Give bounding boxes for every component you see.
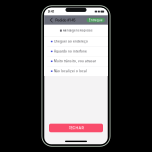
staticText: Cheguei ao endereço: [54, 40, 88, 43]
staticText: Muito trânsito, vou atrasar: [54, 59, 96, 63]
staticText: Aguardo no interfone: [54, 50, 87, 53]
staticText: Não localizei o local: [54, 69, 87, 73]
staticText: FECHAR: [68, 126, 83, 130]
staticText: 9:41: [48, 9, 54, 13]
staticText: Mensagens Rápidas: [63, 29, 92, 32]
button[interactable]: Muito trânsito, vou atrasar: [44, 57, 108, 66]
staticText: Pedido #145: [55, 18, 75, 22]
button[interactable]: Não localizei o local: [44, 66, 108, 76]
button[interactable]: Aguardo no interfone: [44, 47, 108, 56]
button[interactable]: Back: [50, 15, 53, 25]
staticText: Entregue: [89, 18, 103, 22]
button[interactable]: FECHAR: [49, 124, 103, 132]
button[interactable]: Cheguei ao endereço: [44, 37, 108, 46]
button[interactable]: Entregue: [87, 18, 105, 22]
